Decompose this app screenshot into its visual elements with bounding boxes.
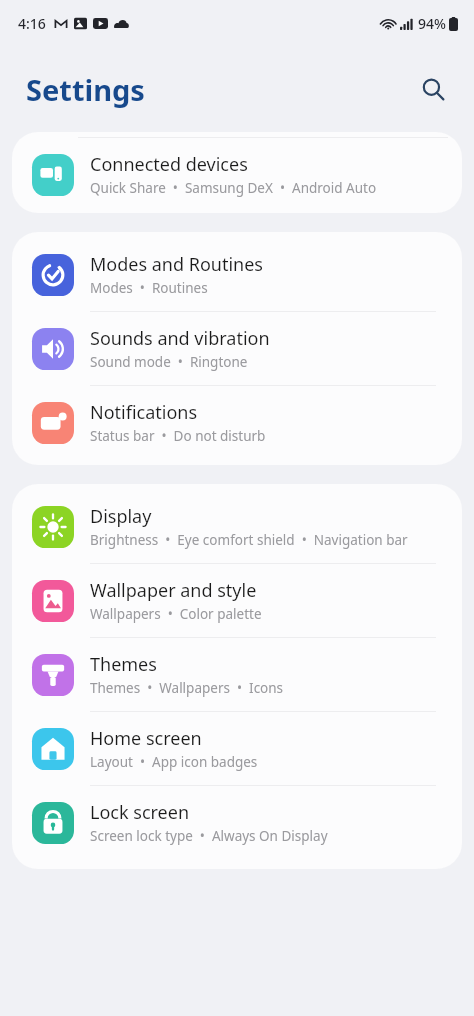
button[interactable]: Notifications xyxy=(12,386,462,459)
button[interactable]: Sounds and vibration xyxy=(12,312,462,385)
staticText: 94% xyxy=(418,14,446,33)
staticText: Modes and Routines xyxy=(90,252,263,277)
staticText: 4:16 xyxy=(18,14,46,33)
button[interactable]: Search settings xyxy=(410,66,456,112)
staticText: Wallpaper and style xyxy=(90,578,257,603)
staticText: Sounds and vibration xyxy=(90,326,270,351)
staticText: Connected devices xyxy=(90,152,248,177)
staticText: Screen lock type • Always On Display xyxy=(90,827,328,845)
staticText: Themes xyxy=(90,652,157,677)
button[interactable]: Display xyxy=(12,490,462,563)
button[interactable]: Themes xyxy=(12,638,462,711)
staticText: Notifications xyxy=(90,400,198,425)
staticText: Modes • Routines xyxy=(90,279,208,297)
staticText: Layout • App icon badges xyxy=(90,753,258,771)
button[interactable]: Connected devices xyxy=(12,138,462,211)
staticText: Settings xyxy=(26,70,145,109)
button[interactable]: Wallpaper and style xyxy=(12,564,462,637)
staticText: Themes • Wallpapers • Icons xyxy=(90,679,284,697)
staticText: Status bar • Do not disturb xyxy=(90,427,266,445)
staticText: Wallpapers • Color palette xyxy=(90,605,262,623)
staticText: Quick Share • Samsung DeX • Android Auto xyxy=(90,179,377,197)
button[interactable]: Home screen xyxy=(12,712,462,785)
staticText: Lock screen xyxy=(90,800,190,825)
staticText: Brightness • Eye comfort shield • Naviga… xyxy=(90,531,408,549)
button[interactable]: Modes and Routines xyxy=(12,238,462,311)
staticText: Home screen xyxy=(90,726,202,751)
staticText: Sound mode • Ringtone xyxy=(90,353,248,371)
button[interactable]: Lock screen xyxy=(12,786,462,859)
staticText: Display xyxy=(90,504,152,529)
